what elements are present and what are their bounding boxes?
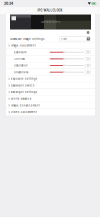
staticText: Image Adjustment <box>11 44 36 47</box>
button[interactable]: Backlight Settings <box>6 89 95 96</box>
staticText: 2021-03-04 20:34:12 <box>41 21 60 23</box>
staticText: Backlight Settings <box>11 90 37 94</box>
staticText: IPC WALLCLOCK <box>37 9 62 12</box>
staticText: White Balance <box>11 97 32 100</box>
staticText: 50 <box>87 64 89 67</box>
staticText: Sharpness <box>14 71 28 74</box>
button[interactable]: Image Adjustment <box>6 42 95 49</box>
staticText: Contrast <box>14 57 25 60</box>
button[interactable]: Video Adjustment <box>6 109 95 116</box>
staticText: 20:34 <box>4 1 13 5</box>
staticText: Grayscale Image Settings <box>10 37 44 40</box>
staticText: Day/Night Switch <box>11 84 35 87</box>
staticText: Close <box>61 38 67 40</box>
button[interactable]: Close <box>59 37 90 41</box>
staticText: Exposure <box>14 51 27 54</box>
staticText: 50 <box>87 51 89 53</box>
button[interactable]: Exposure Settings <box>6 76 95 82</box>
button[interactable]: Day/Night Switch <box>6 82 95 89</box>
staticText: 50 <box>87 58 89 60</box>
staticText: Image Enhancement <box>11 104 40 107</box>
button[interactable]: White Balance <box>6 96 95 102</box>
staticText: Exposure Settings <box>11 77 37 80</box>
staticText: 50 <box>87 71 89 73</box>
staticText: Video Adjustment <box>11 110 37 114</box>
button[interactable]: Image Enhancement <box>6 102 95 109</box>
button[interactable]: Snapshot <box>86 31 90 34</box>
staticText: Saturation <box>14 64 28 67</box>
